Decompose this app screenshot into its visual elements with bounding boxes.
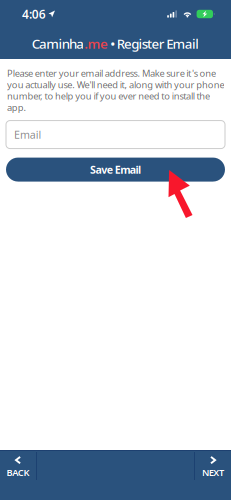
button[interactable]: Save Email: [6, 158, 225, 182]
staticText: Save Email: [90, 162, 141, 177]
staticText: .me: [84, 35, 108, 52]
button[interactable]: NEXT: [195, 450, 231, 500]
staticText: • Register Email: [108, 35, 199, 52]
staticText: Email: [14, 127, 42, 142]
staticText: Please enter your email address. Make su…: [7, 67, 224, 114]
staticText: NEXT: [202, 466, 224, 479]
staticText: Caminha: [32, 35, 84, 52]
staticText: BACK: [6, 466, 29, 479]
staticText: 4:06: [22, 6, 46, 22]
button[interactable]: BACK: [0, 450, 36, 500]
